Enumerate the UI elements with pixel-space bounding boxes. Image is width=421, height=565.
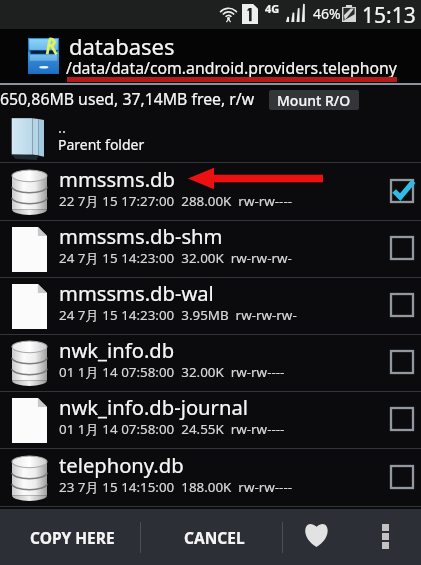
button[interactable]: Select file xyxy=(385,402,419,436)
staticText: telephony.db xyxy=(59,451,184,479)
button[interactable]: nwk_info.db xyxy=(0,335,421,392)
staticText: COPY HERE xyxy=(30,527,115,548)
button[interactable]: Select file xyxy=(385,460,419,494)
staticText: 01 1月 14 07:58:00 32.00K rw-rw---- xyxy=(59,363,285,381)
button[interactable]: mmssms.db xyxy=(0,164,421,221)
button[interactable]: More options xyxy=(352,509,421,565)
staticText: 46% xyxy=(313,4,341,23)
staticText: nwk_info.db xyxy=(59,336,175,364)
staticText: mmssms.db xyxy=(59,165,175,193)
staticText: 24 7月 15 14:23:00 32.00K rw-rw-rw- xyxy=(59,249,292,267)
button[interactable]: nwk_info.db-journal xyxy=(0,392,421,449)
button[interactable]: Select file xyxy=(385,288,419,322)
button[interactable]: Select file xyxy=(385,345,419,379)
button[interactable]: mmssms.db-shm xyxy=(0,221,421,278)
staticText: .. xyxy=(58,117,67,137)
staticText: nwk_info.db-journal xyxy=(59,393,248,421)
button[interactable]: databases xyxy=(0,29,421,84)
staticText: 23 7月 15 14:15:00 188.00K rw-rw---- xyxy=(59,478,293,496)
button[interactable]: Select file xyxy=(385,174,419,208)
button[interactable]: Mount R/O xyxy=(269,90,359,110)
staticText: /data/data/com.android.providers.telepho… xyxy=(66,57,397,79)
staticText: Parent folder xyxy=(58,135,145,154)
button[interactable]: .. xyxy=(0,118,421,163)
staticText: databases xyxy=(69,31,175,61)
staticText: 4G xyxy=(265,1,280,16)
button[interactable]: CANCEL xyxy=(141,509,282,565)
button[interactable]: COPY HERE xyxy=(0,509,140,565)
staticText: 15:13 xyxy=(362,1,416,30)
staticText: 01 1月 14 07:58:00 24.55K rw-rw---- xyxy=(59,420,285,438)
button[interactable]: Favorites xyxy=(283,509,352,565)
staticText: 22 7月 15 17:27:00 288.00K rw-rw---- xyxy=(59,192,293,210)
staticText: Mount R/O xyxy=(277,91,351,110)
button[interactable]: telephony.db xyxy=(0,450,421,507)
staticText: 650,86MB used, 37,14MB free, r/w xyxy=(0,88,255,110)
staticText: mmssms.db-wal xyxy=(59,279,214,307)
staticText: 24 7月 15 14:23:00 3.95MB rw-rw-rw- xyxy=(59,306,297,324)
staticText: CANCEL xyxy=(184,527,245,548)
button[interactable]: mmssms.db-wal xyxy=(0,278,421,335)
staticText: mmssms.db-shm xyxy=(59,222,223,250)
button[interactable]: Select file xyxy=(385,231,419,265)
